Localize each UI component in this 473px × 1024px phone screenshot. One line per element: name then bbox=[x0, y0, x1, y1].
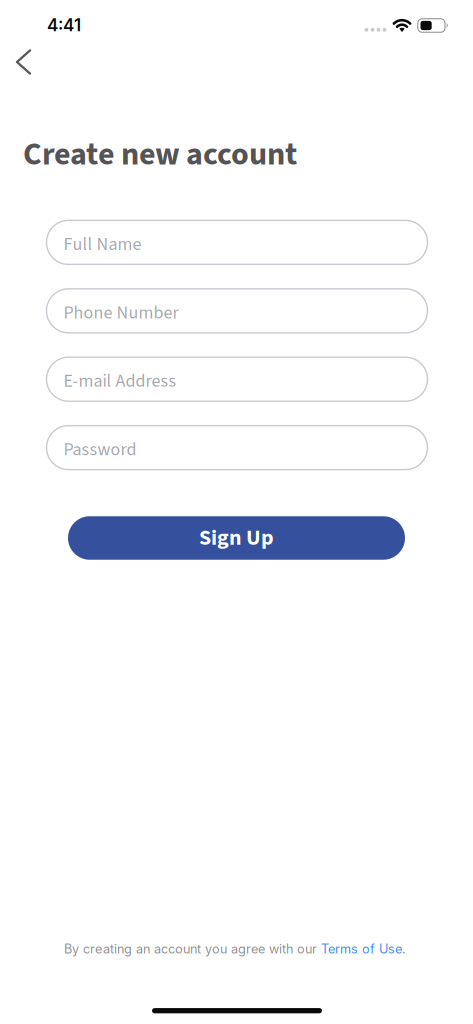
textField[interactable]: Phone Number bbox=[63, 300, 427, 326]
staticText: Full Name bbox=[63, 232, 141, 257]
staticText: Password bbox=[63, 437, 136, 462]
staticText: Terms of Use bbox=[321, 941, 402, 957]
staticText: Phone Number bbox=[63, 300, 178, 326]
staticText: Create new account bbox=[23, 132, 297, 177]
staticText: . bbox=[402, 941, 406, 957]
textField[interactable]: Full Name bbox=[63, 232, 427, 257]
staticText: E-mail Address bbox=[63, 368, 176, 394]
staticText: 4:41 bbox=[47, 15, 81, 35]
staticText: Sign Up bbox=[199, 522, 274, 554]
staticText: By creating an account you agree with ou… bbox=[64, 941, 321, 957]
button[interactable]: Terms of Use bbox=[321, 941, 402, 957]
textField[interactable]: E-mail Address bbox=[63, 368, 427, 394]
button[interactable]: Sign Up bbox=[68, 516, 405, 560]
button[interactable]: Back bbox=[1, 40, 45, 84]
secureTextField[interactable]: Password bbox=[63, 437, 427, 462]
